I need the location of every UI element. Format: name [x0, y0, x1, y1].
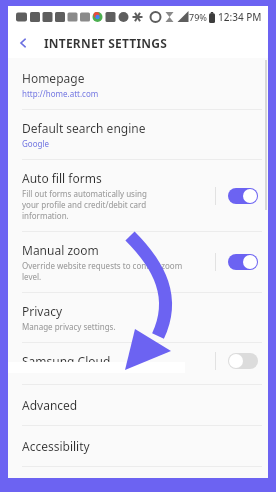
- button[interactable]: Manual zoom: [8, 232, 268, 292]
- button[interactable]: Back: [8, 28, 38, 58]
- button[interactable]: Homepage: [8, 62, 268, 109]
- staticText: Homepage: [22, 70, 85, 86]
- staticText: Accessibility: [22, 438, 90, 454]
- staticText: Manual zoom: [22, 242, 99, 258]
- staticText: http://home.att.com: [22, 88, 99, 99]
- button[interactable]: Auto fill forms: [8, 160, 268, 231]
- staticText: 12:34 PM: [218, 10, 262, 24]
- button[interactable]: Advanced: [8, 385, 268, 425]
- staticText: 79%: [189, 11, 207, 23]
- staticText: Advanced: [22, 397, 78, 413]
- button[interactable]: Toggle off: [228, 353, 258, 369]
- staticText: Samsung Cloud: [22, 353, 111, 369]
- button[interactable]: Accessibility: [8, 426, 268, 466]
- button[interactable]: Toggle on: [228, 254, 258, 270]
- staticText: INTERNET SETTINGS: [44, 35, 168, 51]
- button[interactable]: Privacy: [8, 293, 268, 342]
- button[interactable]: Default search engine: [8, 110, 268, 159]
- staticText: Default search engine: [22, 120, 146, 136]
- staticText: Auto fill forms: [22, 170, 102, 186]
- staticText: Google: [22, 138, 49, 149]
- staticText: Manage privacy settings.: [22, 321, 116, 332]
- staticText: Override website requests to control zoo…: [22, 260, 183, 282]
- staticText: Fill out forms automatically using your …: [22, 188, 147, 221]
- button[interactable]: Toggle on: [228, 188, 258, 204]
- button[interactable]: Samsung Cloud: [8, 343, 268, 384]
- staticText: Privacy: [22, 303, 63, 319]
